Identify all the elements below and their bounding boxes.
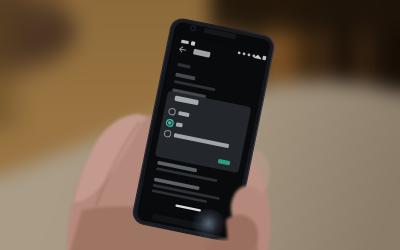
button[interactable]: Phone settings screen — [0, 0, 400, 250]
